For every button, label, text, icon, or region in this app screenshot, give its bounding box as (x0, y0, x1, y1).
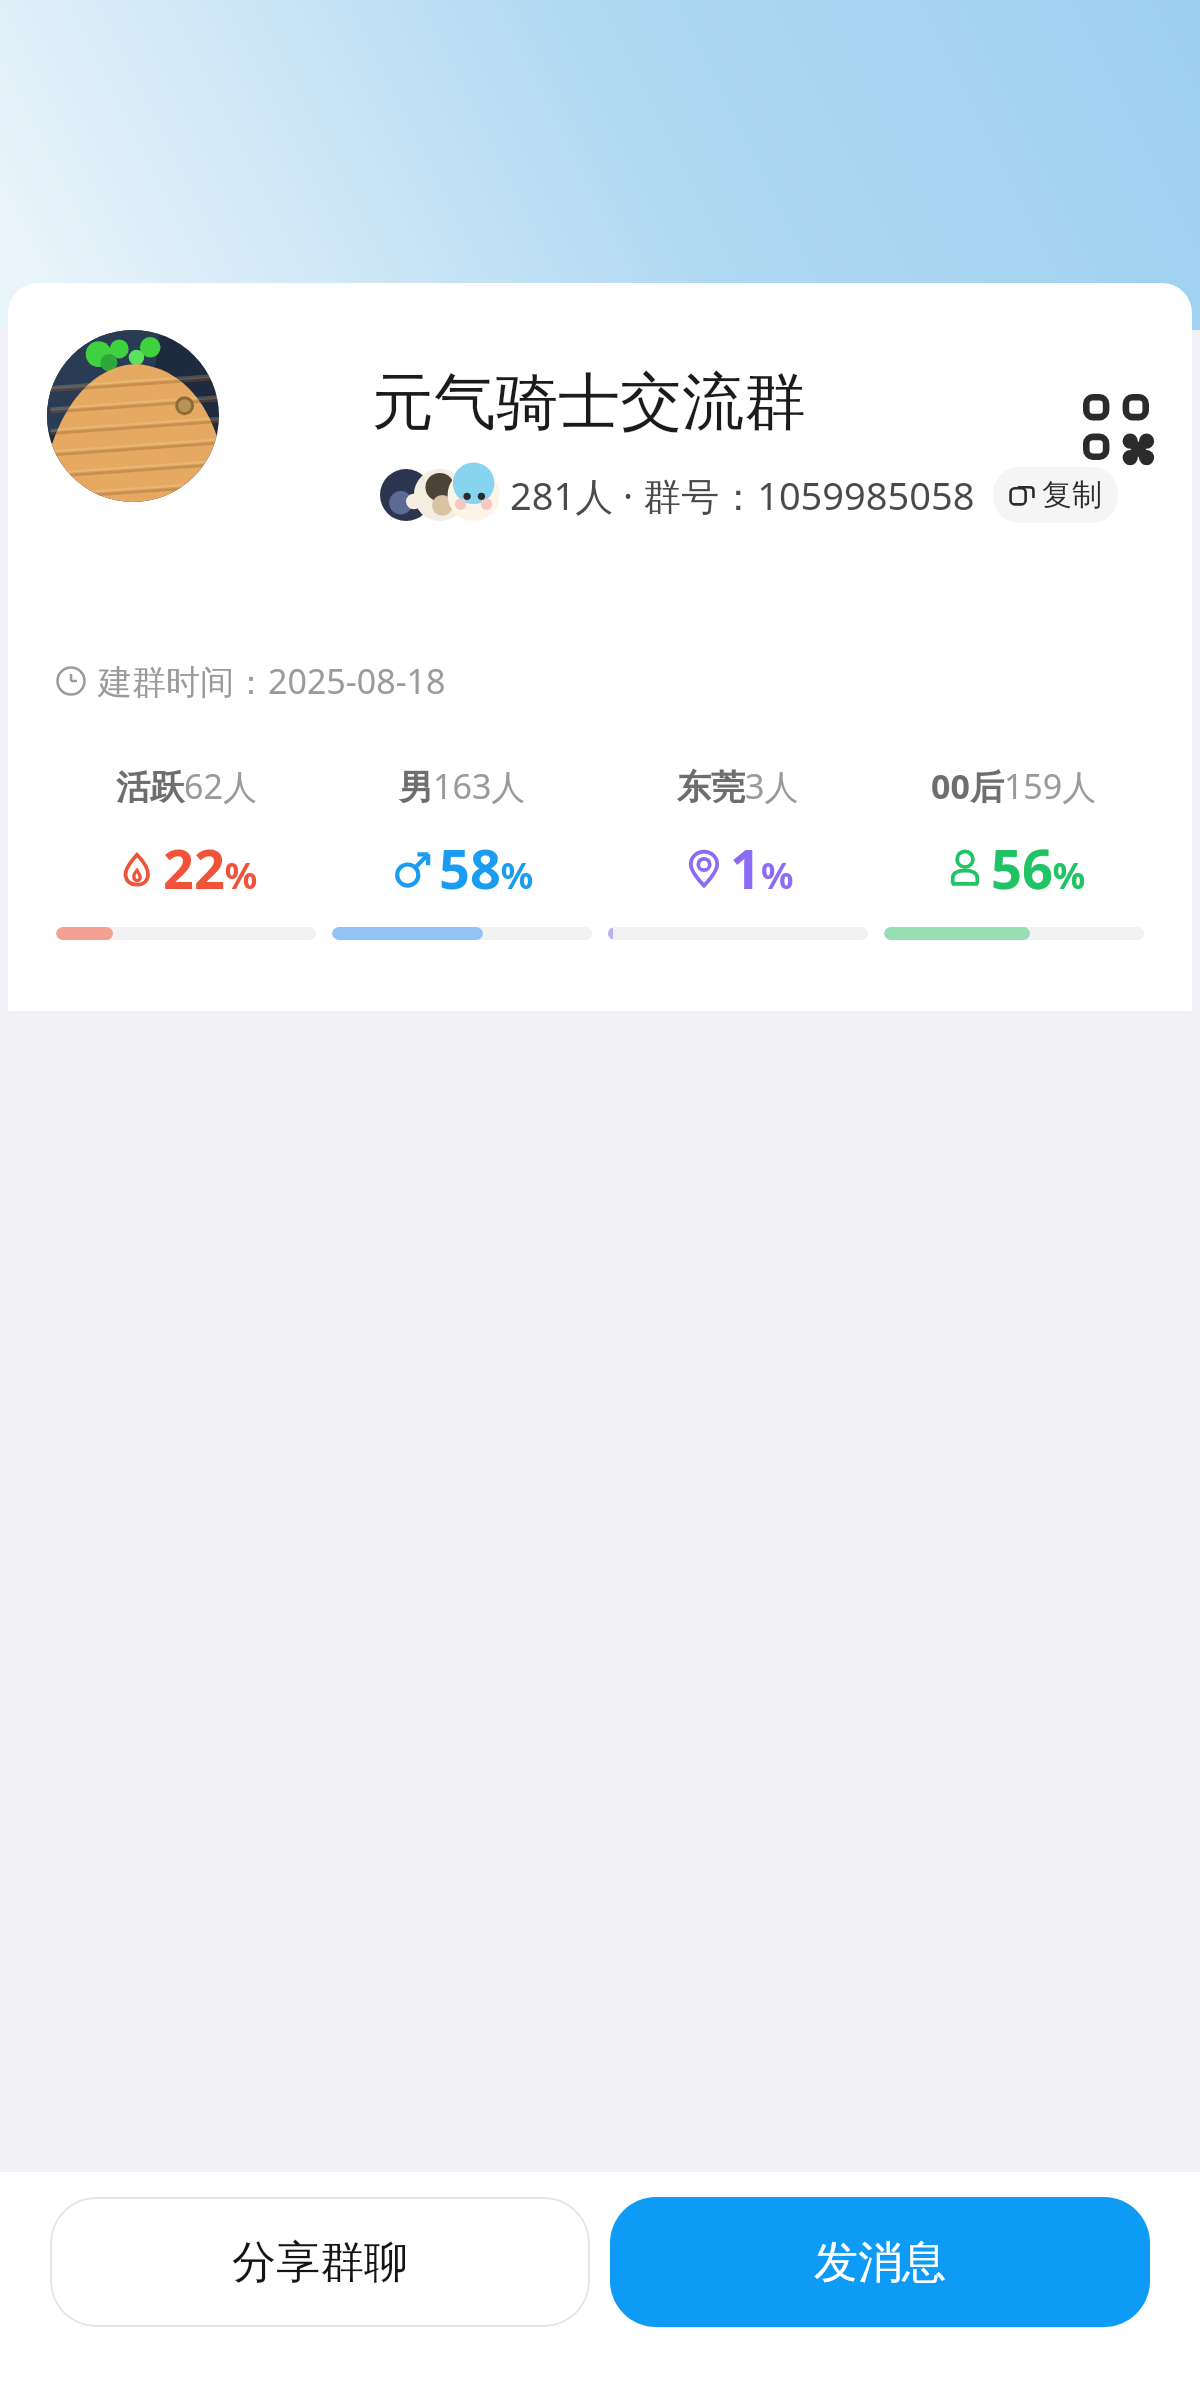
staticText: 发消息 (814, 2235, 946, 2290)
staticText: 活跃62人 (116, 763, 257, 809)
staticText: 男163人 (399, 763, 526, 809)
staticText: 1% (730, 831, 794, 905)
staticText: 58% (439, 831, 534, 905)
staticText: 元气骑士交流群 (372, 363, 806, 441)
button[interactable]: 活跃62人 (48, 763, 324, 940)
button[interactable]: 发消息 (610, 2197, 1150, 2327)
staticText: 56% (991, 831, 1086, 905)
staticText: 分享群聊 (232, 2235, 408, 2290)
staticText: 22% (163, 831, 258, 905)
button[interactable]: Group QR code (1068, 379, 1164, 475)
staticText: 东莞3人 (677, 763, 799, 809)
staticText: 建群时间：2025-08-18 (98, 658, 446, 704)
button[interactable]: Group avatar (47, 330, 219, 502)
button[interactable]: 复制 (993, 467, 1118, 523)
button[interactable]: 男163人 (324, 763, 600, 940)
button[interactable]: 00后159人 (876, 763, 1152, 940)
staticText: 00后159人 (931, 763, 1097, 809)
staticText: 复制 (1042, 476, 1102, 514)
button[interactable]: 东莞3人 (600, 763, 876, 940)
button[interactable]: 分享群聊 (50, 2197, 590, 2327)
staticText: 281人 · 群号：1059985058 (510, 469, 975, 521)
